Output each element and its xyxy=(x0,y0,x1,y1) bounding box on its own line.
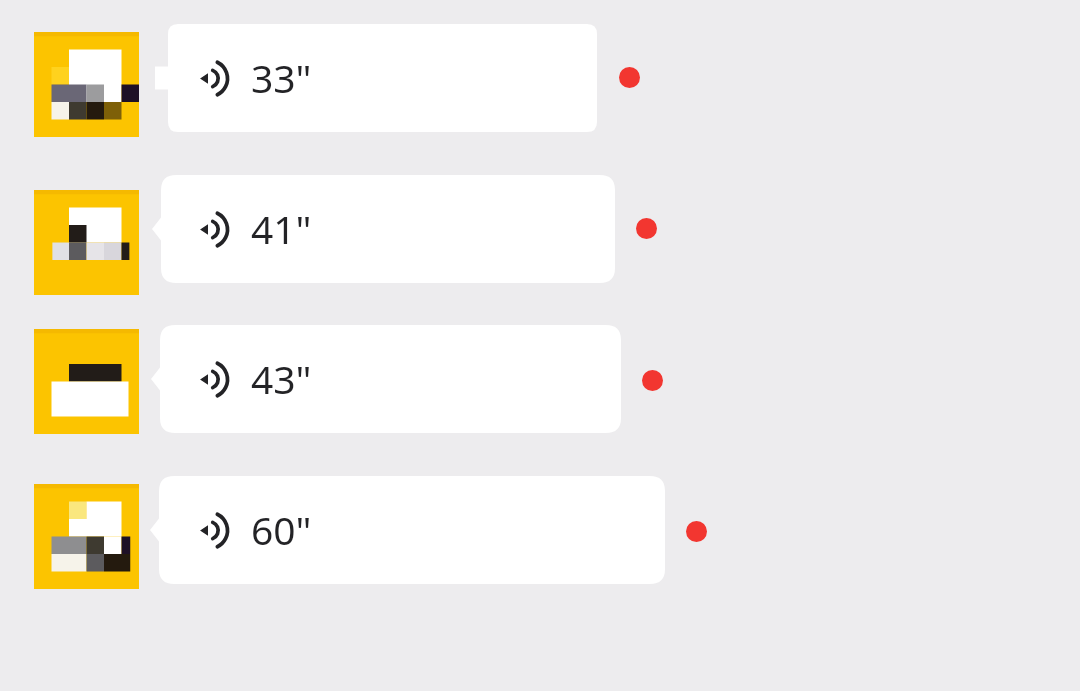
button[interactable]: Contact avatar xyxy=(34,484,139,589)
staticText: 43" xyxy=(251,352,312,405)
staticText: 41" xyxy=(251,202,312,255)
button[interactable]: Contact avatar xyxy=(34,190,139,295)
staticText: 33" xyxy=(251,51,312,104)
button[interactable]: Voice message 41" xyxy=(152,175,615,283)
button[interactable]: Voice message 43" xyxy=(151,325,621,433)
button[interactable]: Contact avatar xyxy=(34,32,139,137)
staticText: 60" xyxy=(251,503,312,556)
button[interactable]: Voice message 60" xyxy=(150,476,665,584)
button[interactable]: Voice message 33" xyxy=(155,24,597,132)
button[interactable]: Contact avatar xyxy=(34,329,139,434)
